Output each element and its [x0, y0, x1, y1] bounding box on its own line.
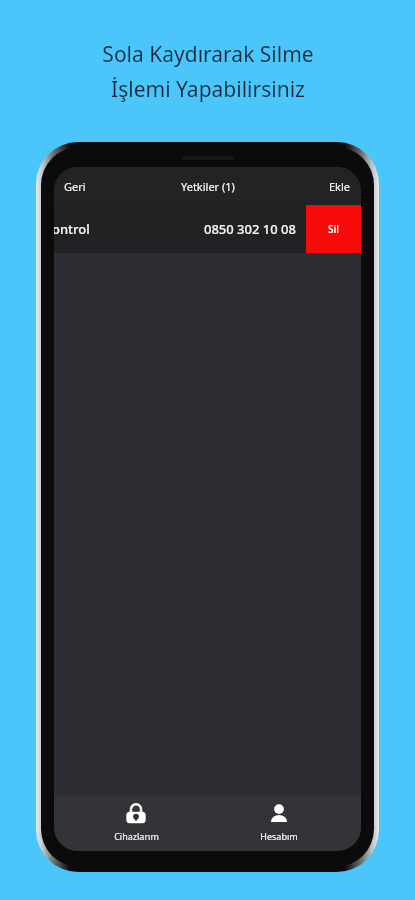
button[interactable]: Hesabım [219, 795, 339, 851]
staticText: İşlemi Yapabilirsiniz [111, 75, 305, 104]
staticText: Sola Kaydırarak Silme [102, 40, 314, 69]
button[interactable]: ontrol [54, 205, 361, 253]
other: Hesabım [268, 803, 290, 825]
staticText: Ekle [329, 179, 351, 194]
staticText: Hesabım [260, 830, 298, 842]
button[interactable]: Cihazlarım [76, 795, 196, 851]
staticText: Cihazlarım [114, 830, 159, 842]
button[interactable]: Sil [306, 205, 361, 253]
staticText: Geri [64, 179, 86, 194]
staticText: ontrol [54, 220, 90, 238]
other: Cihazlarım [125, 803, 147, 825]
staticText: 0850 302 10 08 [204, 220, 296, 238]
staticText: Sil [328, 222, 339, 236]
button[interactable]: Geri [54, 171, 96, 202]
staticText: Yetkiler (1) [181, 179, 235, 194]
button[interactable]: Ekle [319, 171, 361, 202]
